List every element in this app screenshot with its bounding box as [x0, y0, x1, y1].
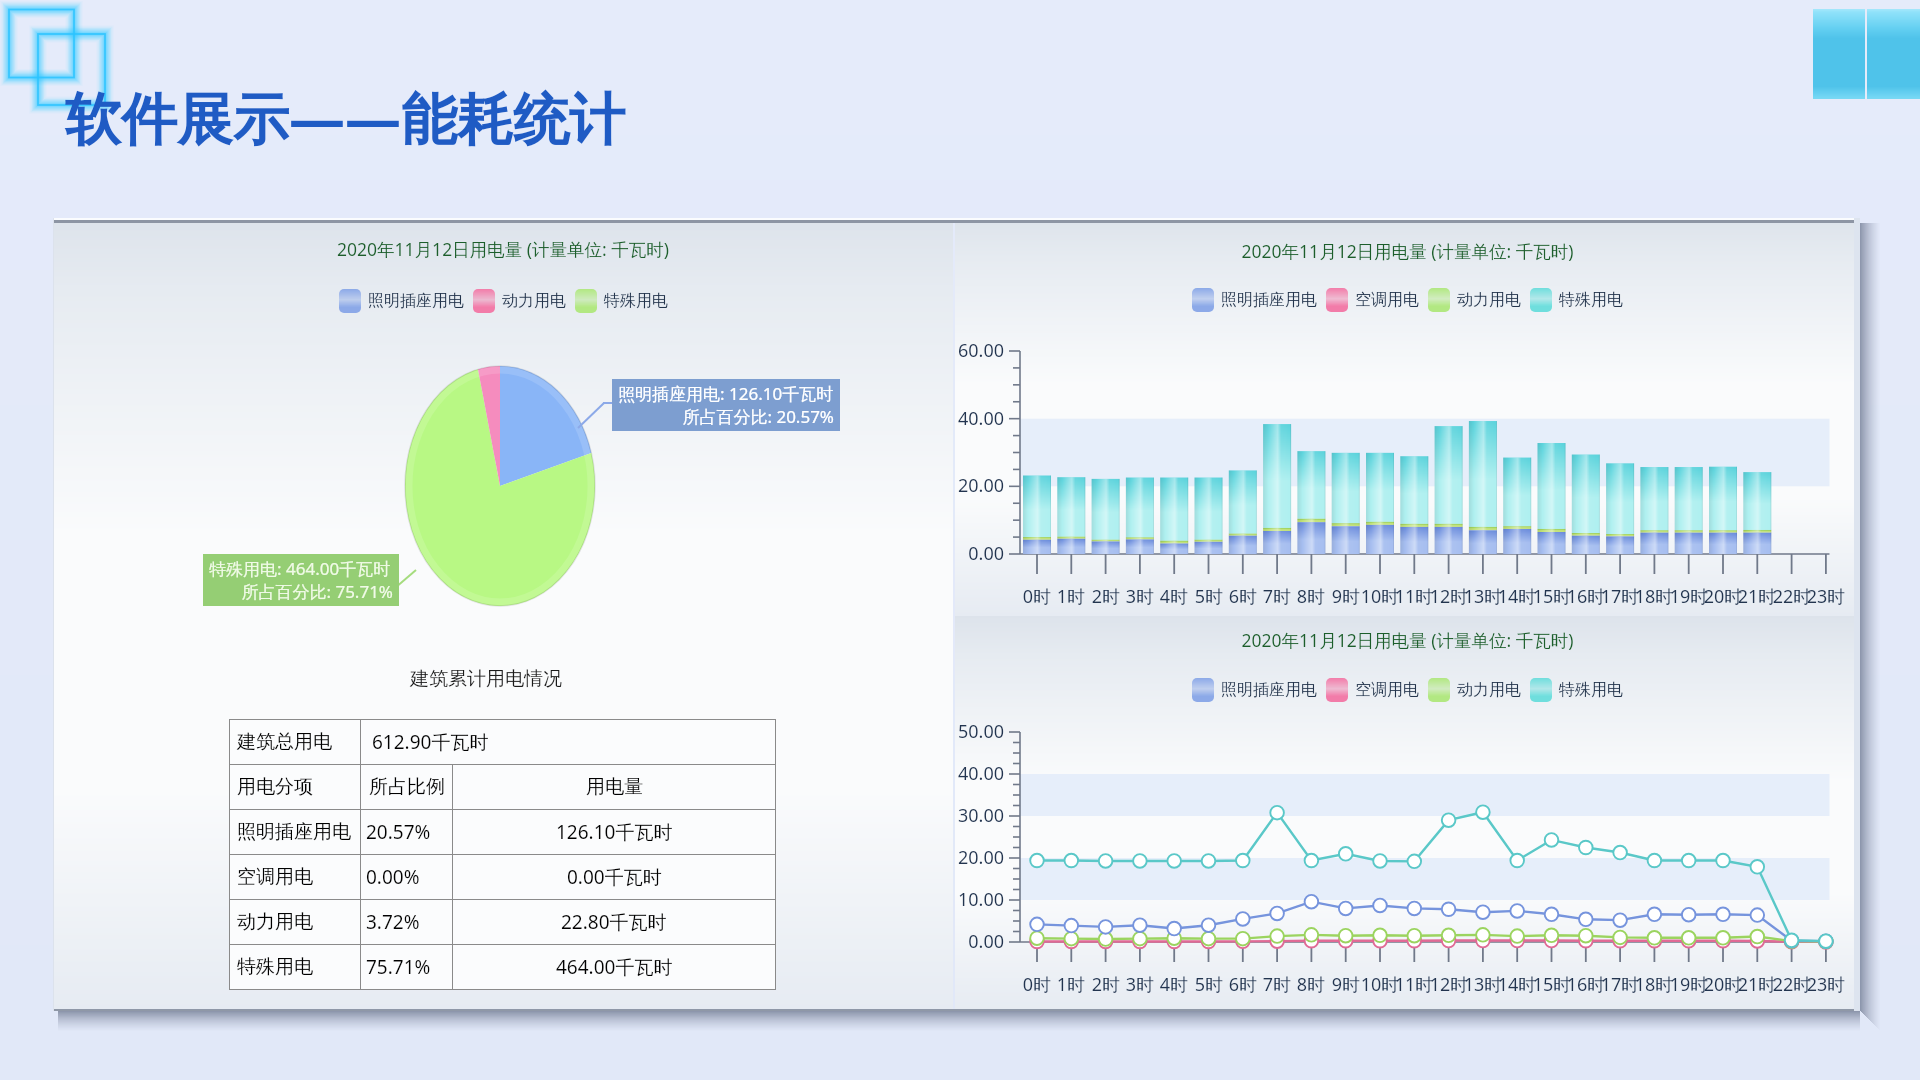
staticText: 9时	[1316, 584, 1376, 609]
button[interactable]: 动力用电	[473, 289, 566, 313]
staticText: 6时	[1213, 584, 1273, 609]
other: Decoration	[0, 0, 130, 125]
staticText: 3时	[1110, 972, 1170, 997]
staticText: 9时	[1316, 972, 1376, 997]
staticText: 126.10千瓦时	[556, 819, 673, 845]
staticText: 4时	[1144, 584, 1204, 609]
staticText: 2时	[1076, 972, 1136, 997]
staticText: 所占比例	[369, 775, 445, 799]
staticText: 11时	[1384, 972, 1444, 997]
staticText: 22.80千瓦时	[561, 909, 667, 935]
staticText: 1时	[1041, 584, 1101, 609]
staticText: 2020年11月12日用电量 (计量单位: 千瓦时)	[955, 628, 1860, 652]
button[interactable]: Hourly energy line chart	[1020, 732, 1829, 942]
staticText: 20.57%	[366, 819, 431, 845]
staticText: 12时	[1419, 584, 1479, 609]
staticText: 16时	[1556, 972, 1616, 997]
staticText: 13时	[1453, 972, 1513, 997]
staticText: 20时	[1693, 584, 1753, 609]
staticText: 0.00	[942, 929, 1004, 954]
button[interactable]: 建筑总用电	[230, 720, 775, 764]
staticText: 17时	[1590, 972, 1650, 997]
staticText: 2020年11月12日用电量 (计量单位: 千瓦时)	[955, 239, 1860, 263]
staticText: 动力用电	[502, 291, 566, 311]
staticText: 15时	[1522, 972, 1582, 997]
staticText: 17时	[1590, 584, 1650, 609]
staticText: 75.71%	[366, 954, 431, 980]
staticText: 23时	[1796, 972, 1856, 997]
button[interactable]: 动力用电	[1428, 288, 1521, 312]
button[interactable]: 动力用电	[230, 900, 775, 944]
button[interactable]: 特殊用电: 464.00千瓦时	[203, 554, 399, 606]
button[interactable]: 照明插座用电	[230, 810, 775, 854]
staticText: 21时	[1727, 584, 1787, 609]
button[interactable]: 空调用电	[1326, 288, 1419, 312]
staticText: 19时	[1659, 972, 1719, 997]
staticText: 22时	[1762, 972, 1822, 997]
staticText: 特殊用电: 464.00千瓦时	[209, 557, 391, 580]
button[interactable]: 特殊用电	[1530, 288, 1623, 312]
staticText: 13时	[1453, 584, 1513, 609]
staticText: 动力用电	[1457, 680, 1521, 700]
staticText: 40.00	[942, 761, 1004, 786]
button[interactable]: Energy breakdown pie chart	[405, 366, 595, 606]
staticText: 3时	[1110, 584, 1170, 609]
staticText: 5时	[1179, 972, 1239, 997]
staticText: 30.00	[942, 803, 1004, 828]
staticText: 8时	[1281, 972, 1341, 997]
staticText: 10.00	[942, 887, 1004, 912]
button[interactable]: 照明插座用电	[1192, 678, 1317, 702]
button[interactable]: 照明插座用电: 126.10千瓦时	[612, 379, 840, 431]
staticText: 23时	[1796, 584, 1856, 609]
staticText: 建筑累计用电情况	[410, 667, 562, 691]
staticText: 建筑总用电	[237, 730, 332, 754]
button[interactable]: Hourly stacked energy bar chart	[1020, 351, 1829, 554]
staticText: 20.00	[942, 473, 1004, 498]
staticText: 软件展示——能耗统计	[65, 79, 625, 155]
button[interactable]: 特殊用电	[230, 945, 775, 989]
staticText: 所占百分比: 75.71%	[209, 580, 393, 603]
staticText: 用电分项	[237, 775, 313, 799]
staticText: 动力用电	[237, 910, 313, 934]
staticText: 4时	[1144, 972, 1204, 997]
staticText: 空调用电	[237, 865, 313, 889]
staticText: 用电量	[586, 775, 643, 799]
staticText: 20时	[1693, 972, 1753, 997]
staticText: 18时	[1624, 584, 1684, 609]
button[interactable]: 动力用电	[1428, 678, 1521, 702]
staticText: 10时	[1350, 584, 1410, 609]
staticText: 21时	[1727, 972, 1787, 997]
button[interactable]: 照明插座用电	[339, 289, 464, 313]
button[interactable]: 特殊用电	[1530, 678, 1623, 702]
staticText: 8时	[1281, 584, 1341, 609]
staticText: 空调用电	[1355, 290, 1419, 310]
staticText: 40.00	[942, 406, 1004, 431]
staticText: 照明插座用电	[368, 291, 464, 311]
button[interactable]: 用电分项	[230, 765, 775, 809]
staticText: 15时	[1522, 584, 1582, 609]
staticText: 5时	[1179, 584, 1239, 609]
staticText: 10时	[1350, 972, 1410, 997]
staticText: 50.00	[942, 719, 1004, 744]
staticText: 照明插座用电	[1221, 290, 1317, 310]
staticText: 照明插座用电	[1221, 680, 1317, 700]
button[interactable]: 空调用电	[230, 855, 775, 899]
button[interactable]: 照明插座用电	[1192, 288, 1317, 312]
staticText: 空调用电	[1355, 680, 1419, 700]
staticText: 所占百分比: 20.57%	[618, 405, 834, 428]
staticText: 0.00%	[366, 864, 420, 890]
staticText: 0时	[1007, 972, 1067, 997]
staticText: 特殊用电	[1559, 290, 1623, 310]
button[interactable]: 空调用电	[1326, 678, 1419, 702]
staticText: 2时	[1076, 584, 1136, 609]
staticText: 60.00	[942, 338, 1004, 363]
staticText: 0.00千瓦时	[567, 864, 662, 890]
staticText: 19时	[1659, 584, 1719, 609]
staticText: 特殊用电	[1559, 680, 1623, 700]
button[interactable]: 特殊用电	[575, 289, 668, 313]
staticText: 18时	[1624, 972, 1684, 997]
staticText: 14时	[1487, 972, 1547, 997]
staticText: 特殊用电	[604, 291, 668, 311]
staticText: 1时	[1041, 972, 1101, 997]
staticText: 7时	[1247, 972, 1307, 997]
